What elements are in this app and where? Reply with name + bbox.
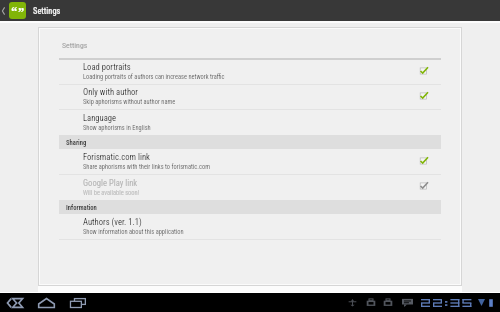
staticText: Load portraits [83,62,131,72]
staticText: Share aphorisms with their links to fori… [83,163,210,171]
staticText: “ [11,2,18,19]
staticText: Sharing [66,139,87,147]
button[interactable]: App icon [9,2,26,19]
button[interactable]: Navigate up [0,0,9,21]
staticText: Show aphorisms in English [83,124,151,132]
button[interactable]: Recent apps [62,293,94,312]
staticText: Loading portraits of authors can increas… [83,73,225,81]
staticText: Information [66,204,97,212]
button[interactable] [59,110,441,135]
button[interactable]: Google Play link [411,173,435,198]
staticText: Only with author [83,87,138,97]
staticText: Show information about this application [83,228,184,236]
button[interactable]: Load portraits [411,58,435,83]
button[interactable] [59,175,441,200]
button[interactable] [59,59,441,84]
button[interactable]: Home [30,293,62,312]
staticText: Authors (ver. 1.1) [83,217,142,227]
button[interactable]: Forismatic.com link [411,148,435,173]
staticText: Google Play link [83,178,138,188]
staticText: Forismatic.com link [83,152,150,162]
button[interactable] [59,149,441,174]
button[interactable] [59,214,441,239]
button[interactable] [59,85,441,110]
staticText: Skip aphorisms without author name [83,98,176,106]
staticText: Language [83,113,117,123]
staticText: Will be available soon! [83,189,140,197]
button[interactable]: Back [0,293,30,312]
staticText: Settings [33,6,61,16]
staticText: Settings [62,41,88,50]
staticText: ” [18,3,25,19]
button[interactable]: Only with author [411,83,435,108]
